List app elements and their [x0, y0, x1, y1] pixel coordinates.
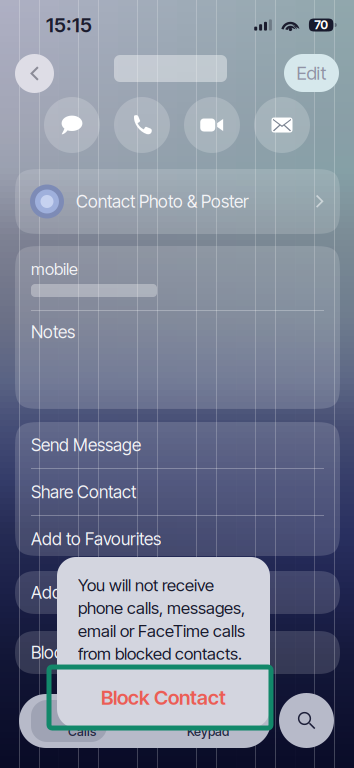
- staticText: Block Contact: [101, 685, 226, 710]
- staticText: Share Contact: [31, 481, 136, 502]
- button[interactable]: Mail: [254, 97, 310, 153]
- staticText: Add to Emergency Contacts: [31, 582, 240, 603]
- button[interactable]: Call: [114, 97, 170, 153]
- staticText: mobile: [31, 259, 78, 279]
- button[interactable]: Back: [15, 54, 54, 93]
- button[interactable]: Video call: [184, 97, 240, 153]
- button[interactable]: Search: [279, 693, 334, 748]
- staticText: Edit: [296, 62, 326, 84]
- staticText: Contact Photo & Poster: [76, 191, 249, 212]
- staticText: Notes: [31, 321, 75, 342]
- staticText: 70: [314, 18, 328, 32]
- staticText: Add to Favourites: [31, 528, 161, 549]
- button[interactable]: Message: [44, 97, 100, 153]
- button[interactable]: Calls: [19, 694, 145, 748]
- staticText: Send Message: [31, 434, 141, 455]
- staticText: email or FaceTime calls: [78, 621, 245, 641]
- staticText: phone calls, messages,: [78, 598, 245, 618]
- staticText: Keypad: [187, 724, 229, 739]
- button[interactable]: Block Contact: [57, 667, 270, 728]
- staticText: You will not receive: [78, 575, 214, 595]
- button[interactable]: Contact Photo & Poster: [15, 169, 340, 234]
- staticText: from blocked contacts.: [78, 643, 242, 664]
- button[interactable]: Send Message: [15, 422, 340, 468]
- button[interactable]: Keypad: [145, 694, 271, 748]
- button[interactable]: Add to Emergency Contacts: [15, 571, 340, 614]
- button[interactable]: Block this Caller: [15, 631, 340, 674]
- staticText: 15:15: [46, 13, 92, 37]
- staticText: Block this Caller: [31, 642, 148, 663]
- staticText: Calls: [68, 724, 96, 739]
- button[interactable]: Share Contact: [15, 469, 340, 515]
- button[interactable]: Add to Favourites: [15, 516, 340, 562]
- button[interactable]: Edit: [284, 54, 339, 92]
